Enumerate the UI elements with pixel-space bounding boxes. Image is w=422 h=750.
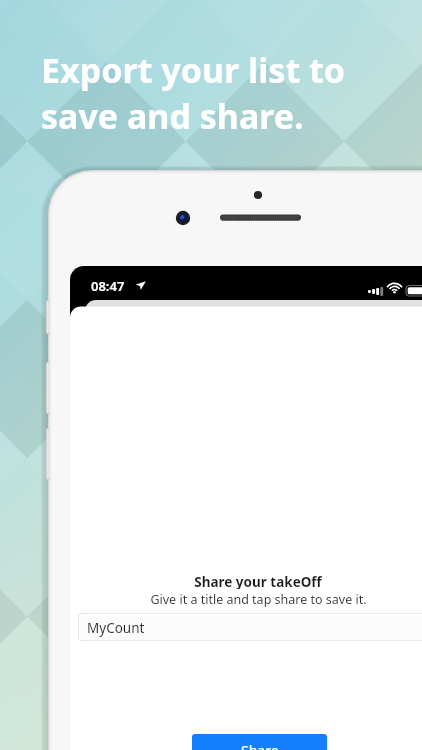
staticText: MyCount bbox=[87, 619, 145, 637]
staticText: save and share. bbox=[41, 93, 304, 139]
button[interactable]: MyCount bbox=[78, 613, 422, 641]
button[interactable]: Share bbox=[192, 734, 327, 750]
staticText: Share bbox=[241, 741, 279, 750]
staticText: 08:47 bbox=[91, 277, 125, 295]
staticText: Give it a title and tap share to save it… bbox=[150, 591, 367, 607]
staticText: Share your takeOff bbox=[194, 573, 322, 589]
staticText: Export your list to bbox=[41, 47, 345, 93]
